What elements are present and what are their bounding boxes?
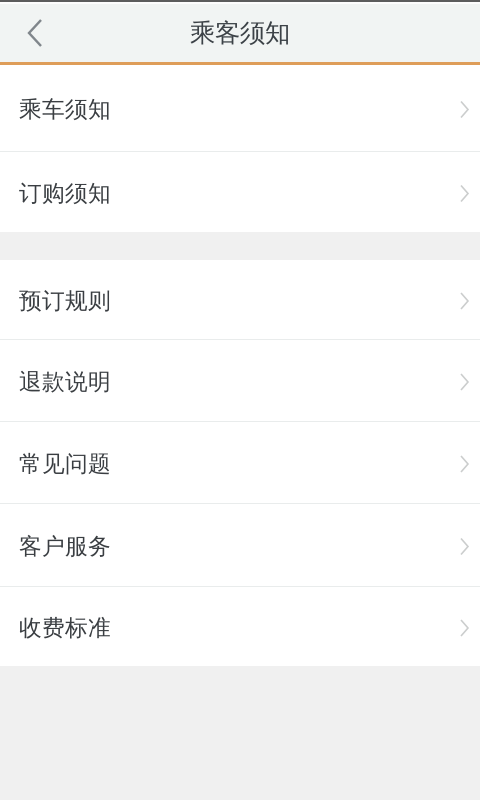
button[interactable]: 预订规则 [0, 260, 480, 339]
staticText: 乘客须知 [190, 17, 290, 48]
staticText: 订购须知 [19, 180, 111, 207]
staticText: 退款说明 [19, 368, 111, 396]
staticText: 客户服务 [19, 533, 111, 560]
button[interactable]: Back [0, 4, 72, 62]
button[interactable]: 常见问题 [0, 422, 480, 503]
staticText: 乘车须知 [19, 96, 111, 123]
button[interactable]: 订购须知 [0, 152, 480, 232]
staticText: 预订规则 [19, 287, 111, 315]
button[interactable]: 客户服务 [0, 504, 480, 586]
staticText: 收费标准 [19, 614, 111, 642]
button[interactable]: 收费标准 [0, 587, 480, 666]
button[interactable]: 退款说明 [0, 340, 480, 421]
button[interactable]: 乘车须知 [0, 65, 480, 151]
staticText: 常见问题 [19, 450, 111, 478]
